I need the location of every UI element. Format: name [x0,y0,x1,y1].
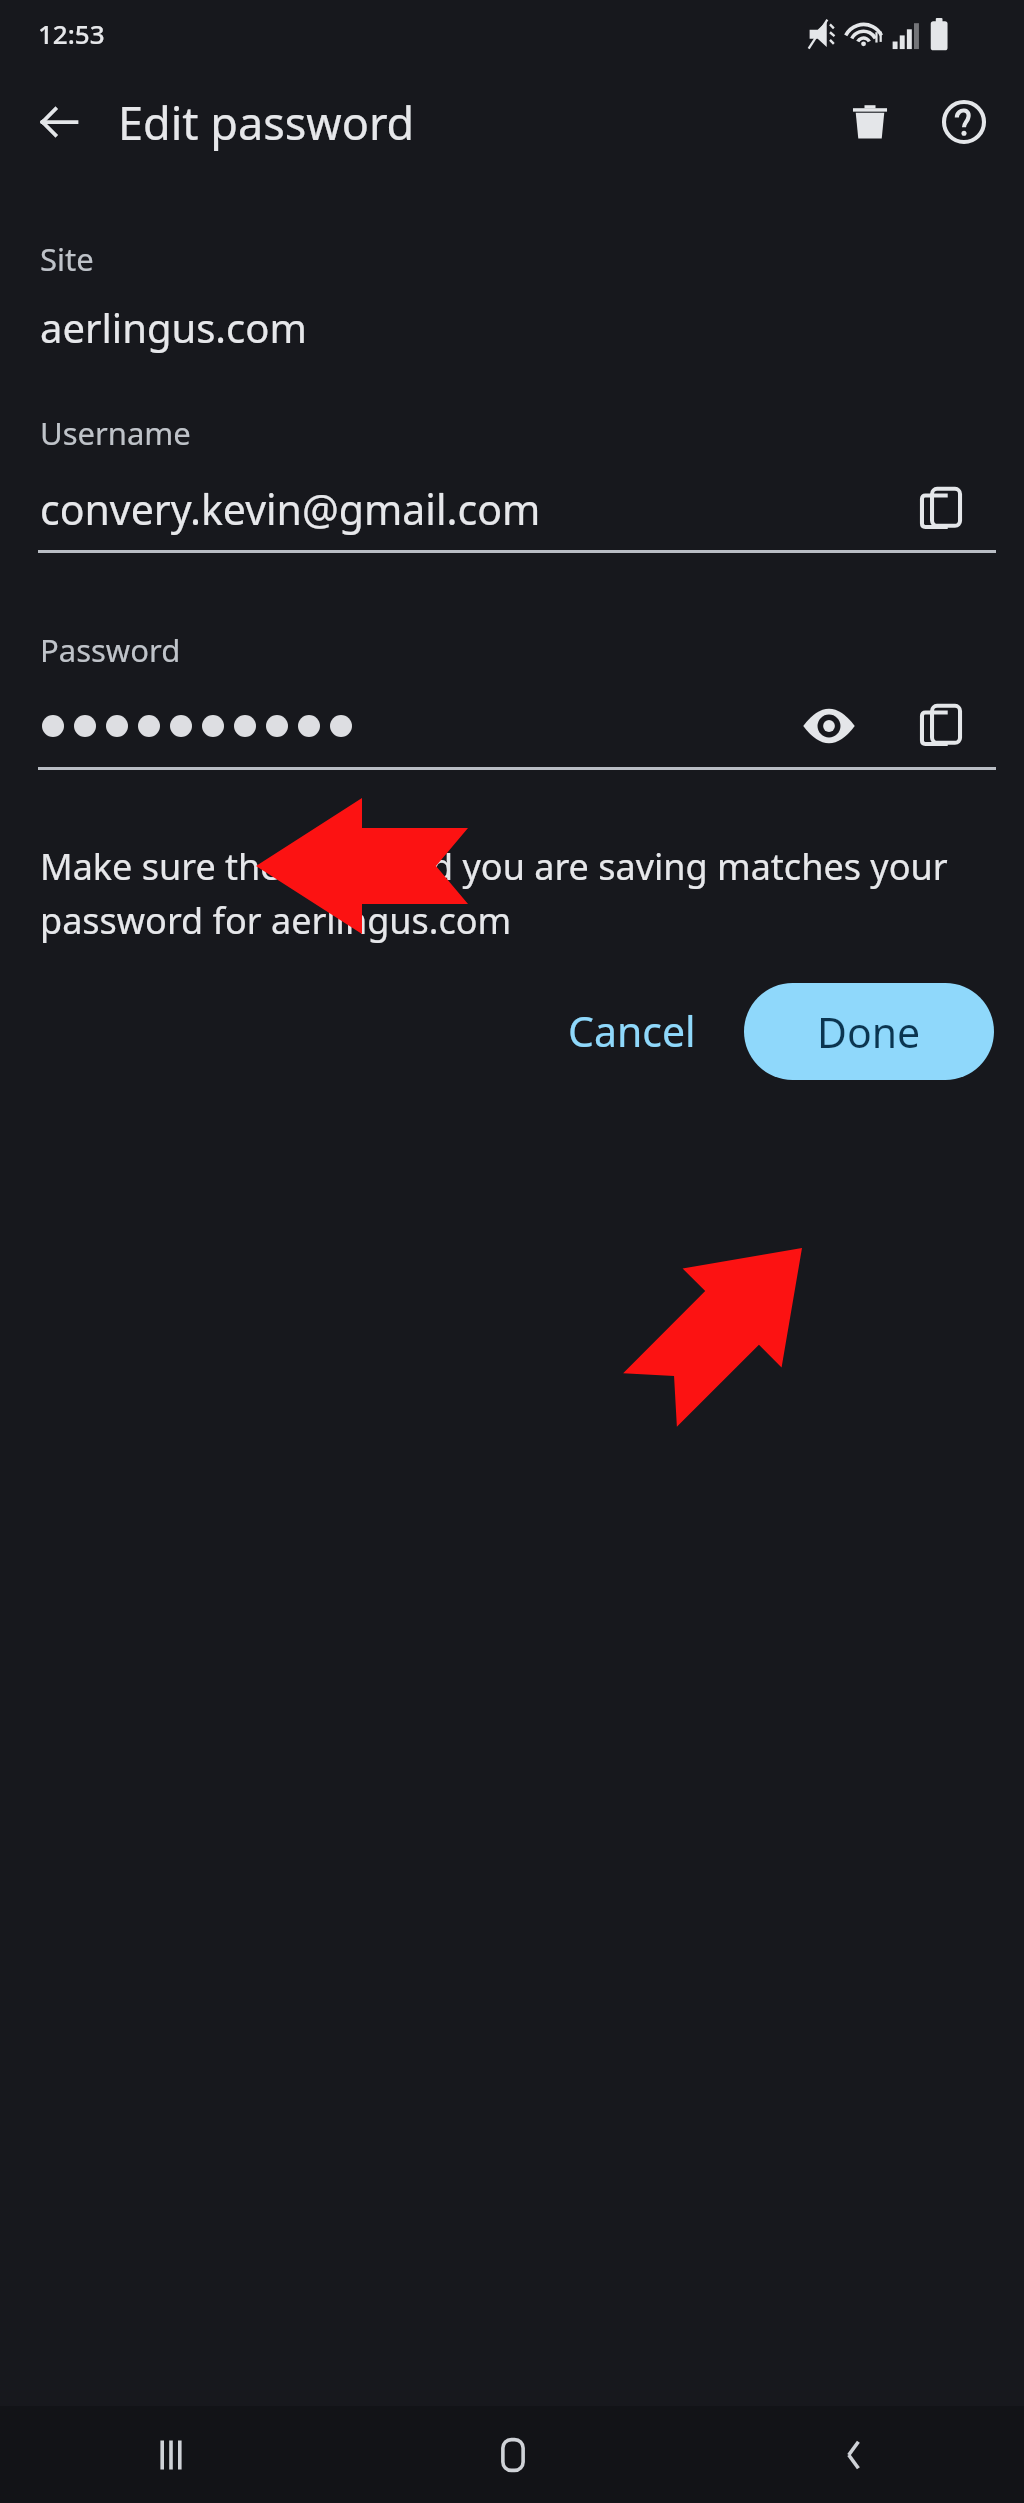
button[interactable]: Cancel [532,981,732,1081]
staticText: Password [40,629,181,671]
staticText: Done [817,1004,921,1060]
button[interactable]: Show password [786,685,872,767]
staticText: convery.kevin@gmail.com [40,481,541,537]
staticText: Cancel [568,1003,696,1059]
staticText: Username [40,412,191,454]
staticText: Site [40,238,94,280]
button[interactable]: Back [683,2406,1024,2503]
staticText: 12:53 [38,16,105,51]
staticText: aerlingus.com [40,300,307,354]
button[interactable]: Copy username [898,468,984,550]
button[interactable]: Recent apps [0,2406,342,2503]
staticText: Edit password [118,92,415,153]
button[interactable]: Done [744,983,994,1080]
button[interactable]: Help [920,78,1008,166]
button[interactable]: Copy password [898,685,984,767]
staticText: Make sure the password you are saving ma… [40,842,960,945]
button[interactable]: Home [342,2406,683,2503]
button[interactable]: Delete password [826,78,914,166]
button[interactable]: Back [14,77,104,167]
